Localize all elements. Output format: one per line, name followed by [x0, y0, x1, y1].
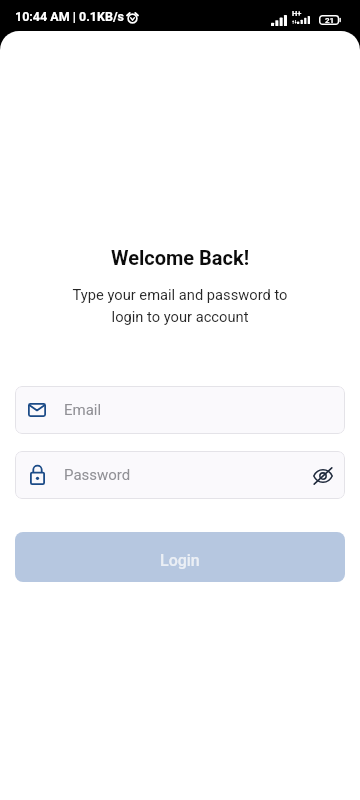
staticText: Email: [64, 401, 333, 419]
staticText: 10:44 AM | 0.1KB/s: [15, 9, 124, 24]
button[interactable]: Email: [15, 386, 345, 434]
staticText: Welcome Back!: [0, 246, 360, 269]
staticText: Login: [160, 551, 200, 570]
staticText: Password: [64, 466, 307, 484]
button[interactable]: Password: [15, 451, 345, 499]
button[interactable]: Toggle password visibility: [307, 462, 333, 488]
staticText: 21: [325, 16, 335, 25]
staticText: H+: [292, 9, 302, 18]
button[interactable]: Login: [15, 532, 345, 582]
staticText: Type your email and password to login to…: [0, 286, 360, 325]
